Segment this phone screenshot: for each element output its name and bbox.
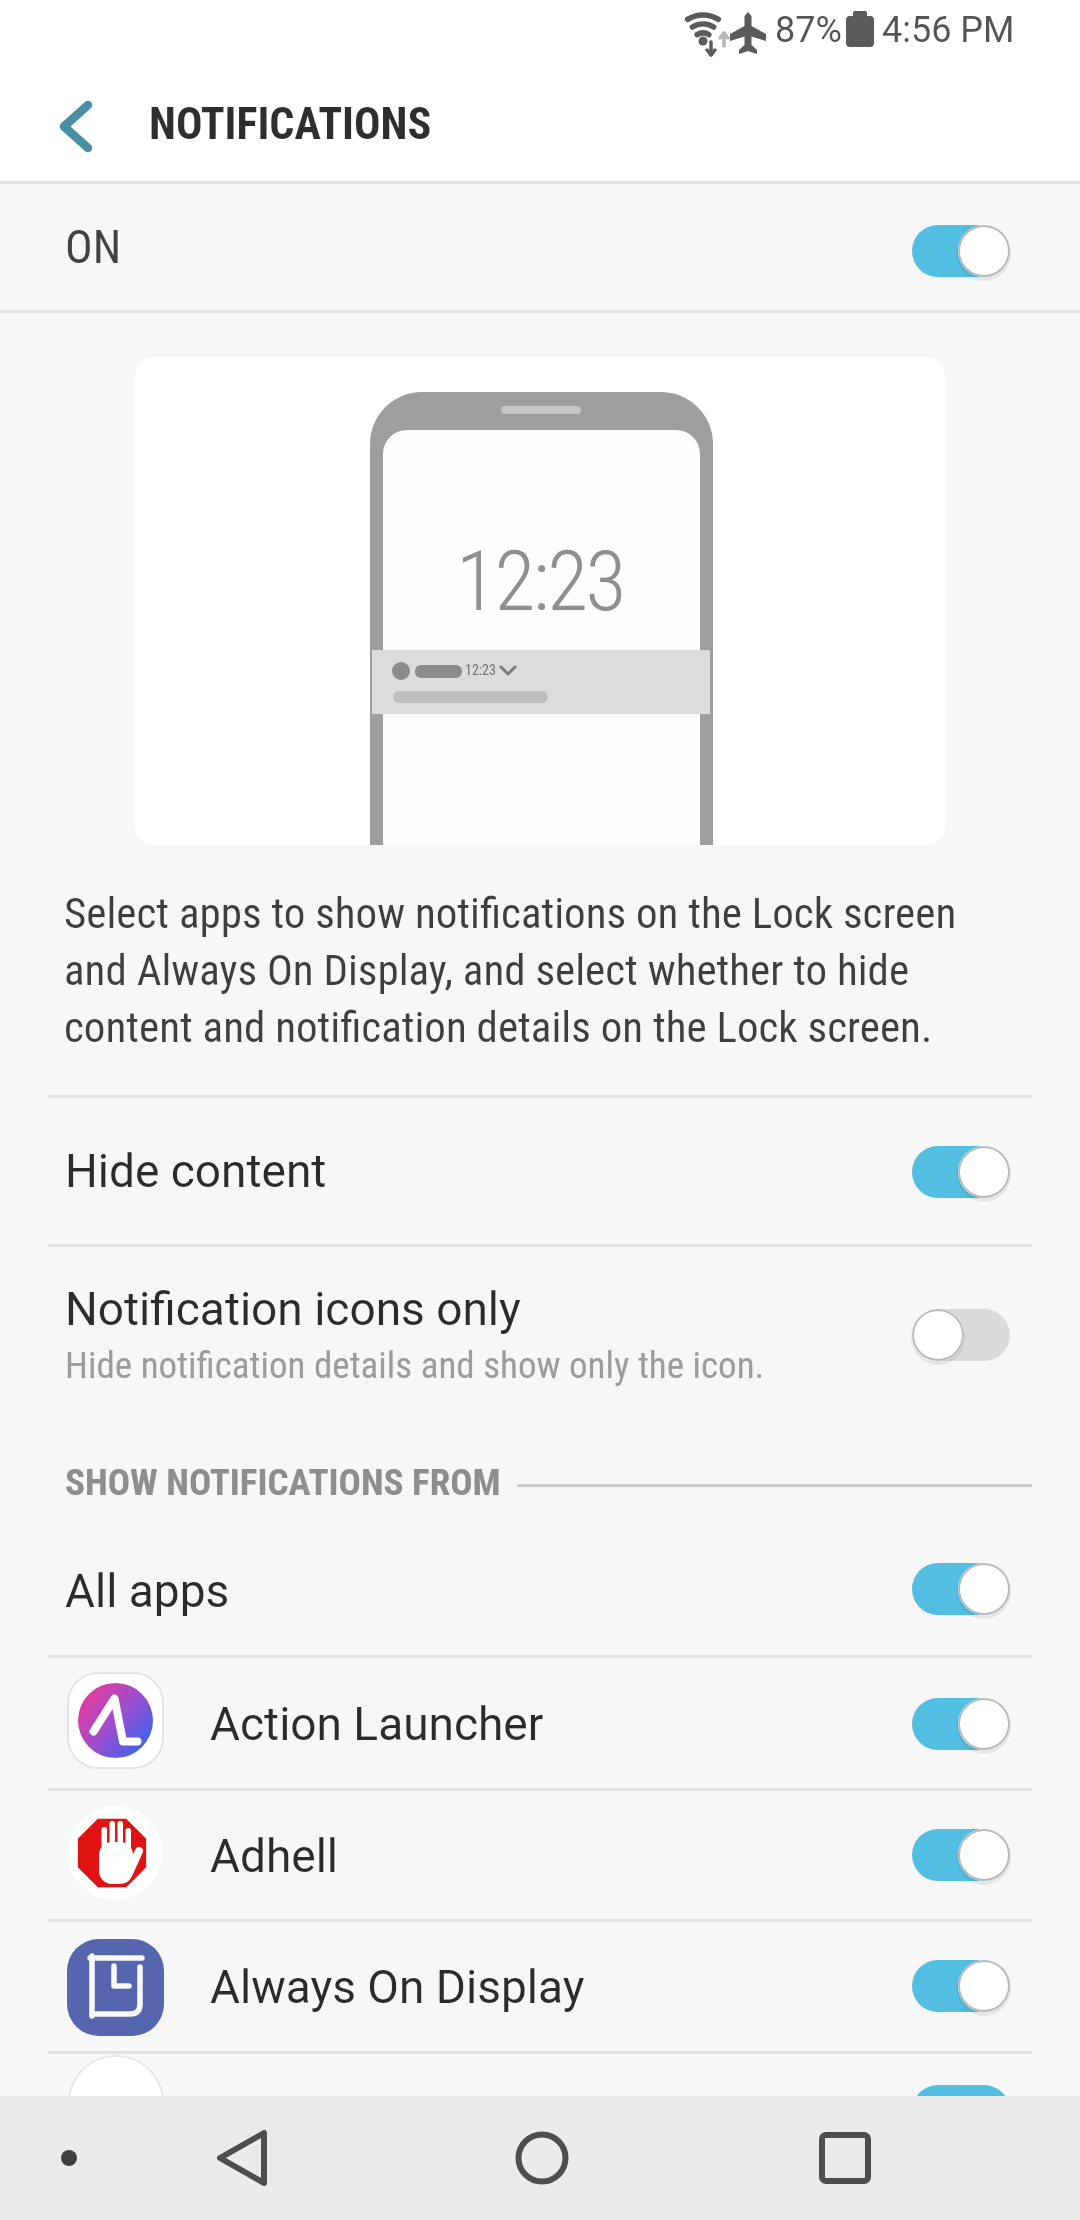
button[interactable]: Adhell bbox=[0, 1792, 1080, 1919]
staticText: 87% bbox=[775, 9, 842, 51]
button[interactable] bbox=[467, 2106, 617, 2210]
button[interactable] bbox=[170, 2106, 320, 2210]
button[interactable] bbox=[40, 95, 110, 157]
button[interactable] bbox=[912, 225, 1010, 277]
button[interactable] bbox=[912, 1698, 1010, 1750]
button[interactable]: ON bbox=[0, 184, 1080, 310]
staticText: Adhell bbox=[210, 1829, 339, 1883]
button[interactable] bbox=[912, 1960, 1010, 2012]
button[interactable]: All apps bbox=[0, 1526, 1080, 1655]
button[interactable]: Action Launcher bbox=[0, 1660, 1080, 1788]
button[interactable]: Hide content bbox=[0, 1098, 1080, 1244]
button[interactable] bbox=[912, 1829, 1010, 1881]
button[interactable] bbox=[770, 2106, 920, 2210]
button[interactable] bbox=[912, 1309, 1010, 1361]
staticText: All apps bbox=[65, 1564, 230, 1618]
staticText: ON bbox=[65, 220, 122, 274]
button[interactable]: Notification icons only bbox=[0, 1246, 1080, 1418]
button[interactable] bbox=[912, 1146, 1010, 1198]
staticText: Select apps to show notifications on the… bbox=[64, 888, 957, 1053]
staticText: Hide notification details and show only … bbox=[65, 1344, 765, 1387]
staticText: Notification icons only bbox=[65, 1282, 521, 1336]
staticText: SHOW NOTIFICATIONS FROM bbox=[65, 1461, 501, 1504]
staticText: Action Launcher bbox=[210, 1697, 544, 1751]
staticText: 4:56 PM bbox=[882, 9, 1015, 51]
staticText: Hide content bbox=[65, 1144, 327, 1198]
staticText: 12:23 bbox=[465, 662, 496, 678]
staticText: 12:23 bbox=[135, 532, 945, 630]
staticText: Always On Display bbox=[210, 1960, 585, 2014]
staticText: NOTIFICATIONS bbox=[149, 98, 432, 150]
button[interactable] bbox=[912, 1563, 1010, 1615]
button[interactable]: Always On Display bbox=[0, 1922, 1080, 2051]
